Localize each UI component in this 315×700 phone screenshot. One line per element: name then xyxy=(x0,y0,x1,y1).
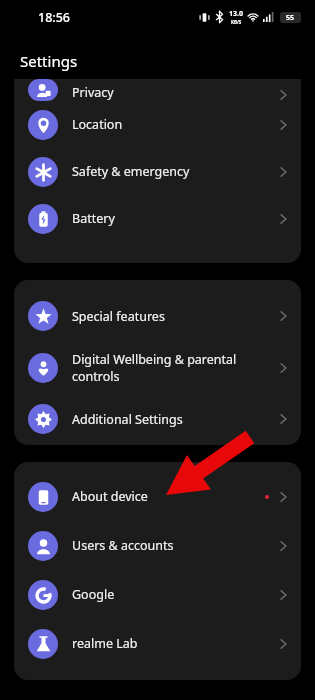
staticText: Special features xyxy=(72,308,272,325)
staticText: 18:56 xyxy=(38,9,71,26)
staticText: Additional Settings xyxy=(72,411,272,428)
staticText: Privacy xyxy=(72,84,272,101)
staticText: 55 xyxy=(286,13,295,23)
button[interactable]: Privacy xyxy=(14,79,301,101)
staticText: About device xyxy=(72,488,257,505)
button[interactable]: Additional Settings xyxy=(14,395,301,443)
staticText: Digital Wellbeing & parental controls xyxy=(72,351,272,384)
button[interactable]: About device xyxy=(14,472,301,521)
staticText: Battery xyxy=(72,210,272,227)
button[interactable]: Google xyxy=(14,570,301,619)
staticText: Google xyxy=(72,586,272,603)
staticText: Safety & emergency xyxy=(72,163,272,180)
button[interactable]: Special features xyxy=(14,292,301,340)
button[interactable]: realme Lab xyxy=(14,619,301,668)
button[interactable]: Location xyxy=(14,101,301,148)
button[interactable]: Battery xyxy=(14,195,301,242)
staticText: realme Lab xyxy=(72,635,272,652)
button[interactable]: Users & accounts xyxy=(14,521,301,570)
staticText: Settings xyxy=(20,51,78,71)
staticText: KB/S xyxy=(231,19,242,25)
staticText: Users & accounts xyxy=(72,537,272,554)
button[interactable]: Safety & emergency xyxy=(14,148,301,195)
staticText: Location xyxy=(72,116,272,133)
staticText: 13.0 xyxy=(229,9,243,19)
button[interactable]: Digital Wellbeing & parental controls xyxy=(14,340,301,395)
